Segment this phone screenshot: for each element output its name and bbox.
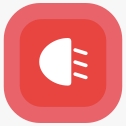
button[interactable]: Headlights	[0, 0, 126, 126]
